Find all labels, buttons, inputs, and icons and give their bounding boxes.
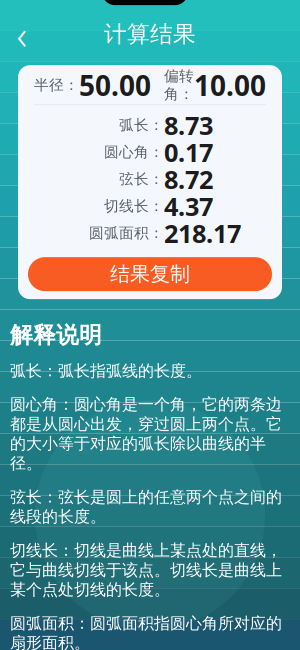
staticText: 计算结果 <box>104 20 196 48</box>
staticText: 弧长：弧长指弧线的长度。 <box>10 361 202 381</box>
staticText: 弦长： <box>119 170 164 188</box>
button[interactable]: 结果复制 <box>28 257 272 291</box>
staticText: 切线长：切线是曲线上某点处的直线，它与曲线切线于该点。切线长是曲线上某个点处切线… <box>10 541 282 600</box>
staticText: 圆弧面积： <box>89 224 164 242</box>
staticText: ‹ <box>16 8 27 61</box>
staticText: 50.00 <box>79 67 151 104</box>
staticText: 218.17 <box>164 216 241 250</box>
staticText: 圆弧面积：圆弧面积指圆心角所对应的扇形面积。 <box>10 613 282 650</box>
staticText: 结果复制 <box>110 262 190 286</box>
staticText: 圆心角：圆心角是一个角，它的两条边都是从圆心出发，穿过圆上两个点。它的大小等于对… <box>10 395 282 473</box>
staticText: 圆心角： <box>104 143 164 161</box>
staticText: 半径： <box>34 76 79 94</box>
button[interactable]: Back <box>0 14 44 54</box>
staticText: 弧长： <box>119 116 164 134</box>
staticText: 0.17 <box>164 135 213 169</box>
staticText: 弦长：弦长是圆上的任意两个点之间的线段的长度。 <box>10 487 282 527</box>
staticText: 解释说明 <box>10 321 102 349</box>
staticText: 偏转角： <box>164 67 194 103</box>
staticText: 切线长： <box>104 197 164 215</box>
staticText: 4.37 <box>164 189 213 223</box>
staticText: 8.73 <box>164 108 213 142</box>
staticText: 8.72 <box>164 162 213 196</box>
staticText: 10.00 <box>194 67 266 104</box>
